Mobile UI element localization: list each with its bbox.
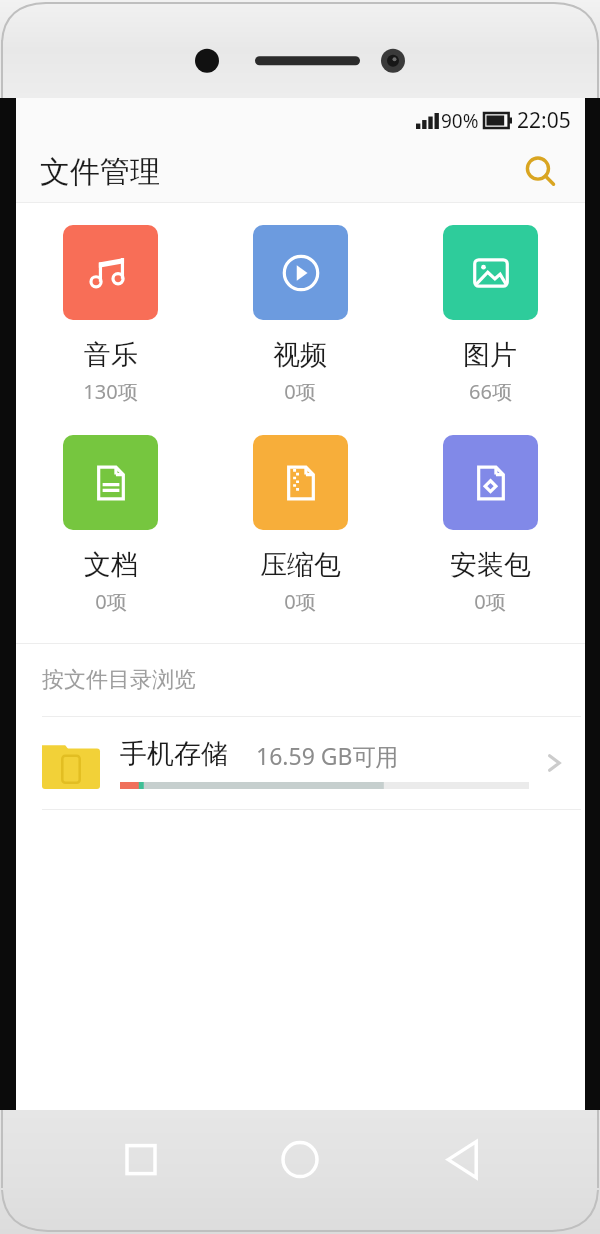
staticText: 音乐 bbox=[84, 338, 138, 372]
button[interactable]: Search bbox=[515, 146, 567, 198]
staticText: 90% bbox=[441, 108, 479, 134]
staticText: 22:05 bbox=[517, 106, 571, 135]
button[interactable]: 手机存储 bbox=[16, 717, 585, 809]
staticText: 手机存储 bbox=[120, 737, 228, 771]
staticText: 130项 bbox=[83, 378, 138, 405]
button[interactable]: 图片 bbox=[395, 225, 585, 405]
button[interactable]: 视频 bbox=[205, 225, 395, 405]
staticText: 0项 bbox=[284, 588, 316, 615]
staticText: 视频 bbox=[273, 338, 327, 372]
staticText: 安装包 bbox=[450, 548, 531, 582]
staticText: 66项 bbox=[469, 378, 512, 405]
staticText: 按文件目录浏览 bbox=[42, 666, 196, 694]
staticText: 压缩包 bbox=[260, 548, 341, 582]
staticText: 0项 bbox=[284, 378, 316, 405]
staticText: 0项 bbox=[474, 588, 506, 615]
staticText: 0项 bbox=[95, 588, 127, 615]
staticText: 文档 bbox=[84, 548, 138, 582]
staticText: 16.59 GB可用 bbox=[256, 740, 399, 771]
button[interactable]: 文档 bbox=[16, 435, 205, 615]
staticText: 文件管理 bbox=[40, 153, 160, 191]
button[interactable]: 压缩包 bbox=[205, 435, 395, 615]
button[interactable]: 音乐 bbox=[16, 225, 205, 405]
button[interactable]: 安装包 bbox=[395, 435, 585, 615]
staticText: 图片 bbox=[463, 338, 517, 372]
